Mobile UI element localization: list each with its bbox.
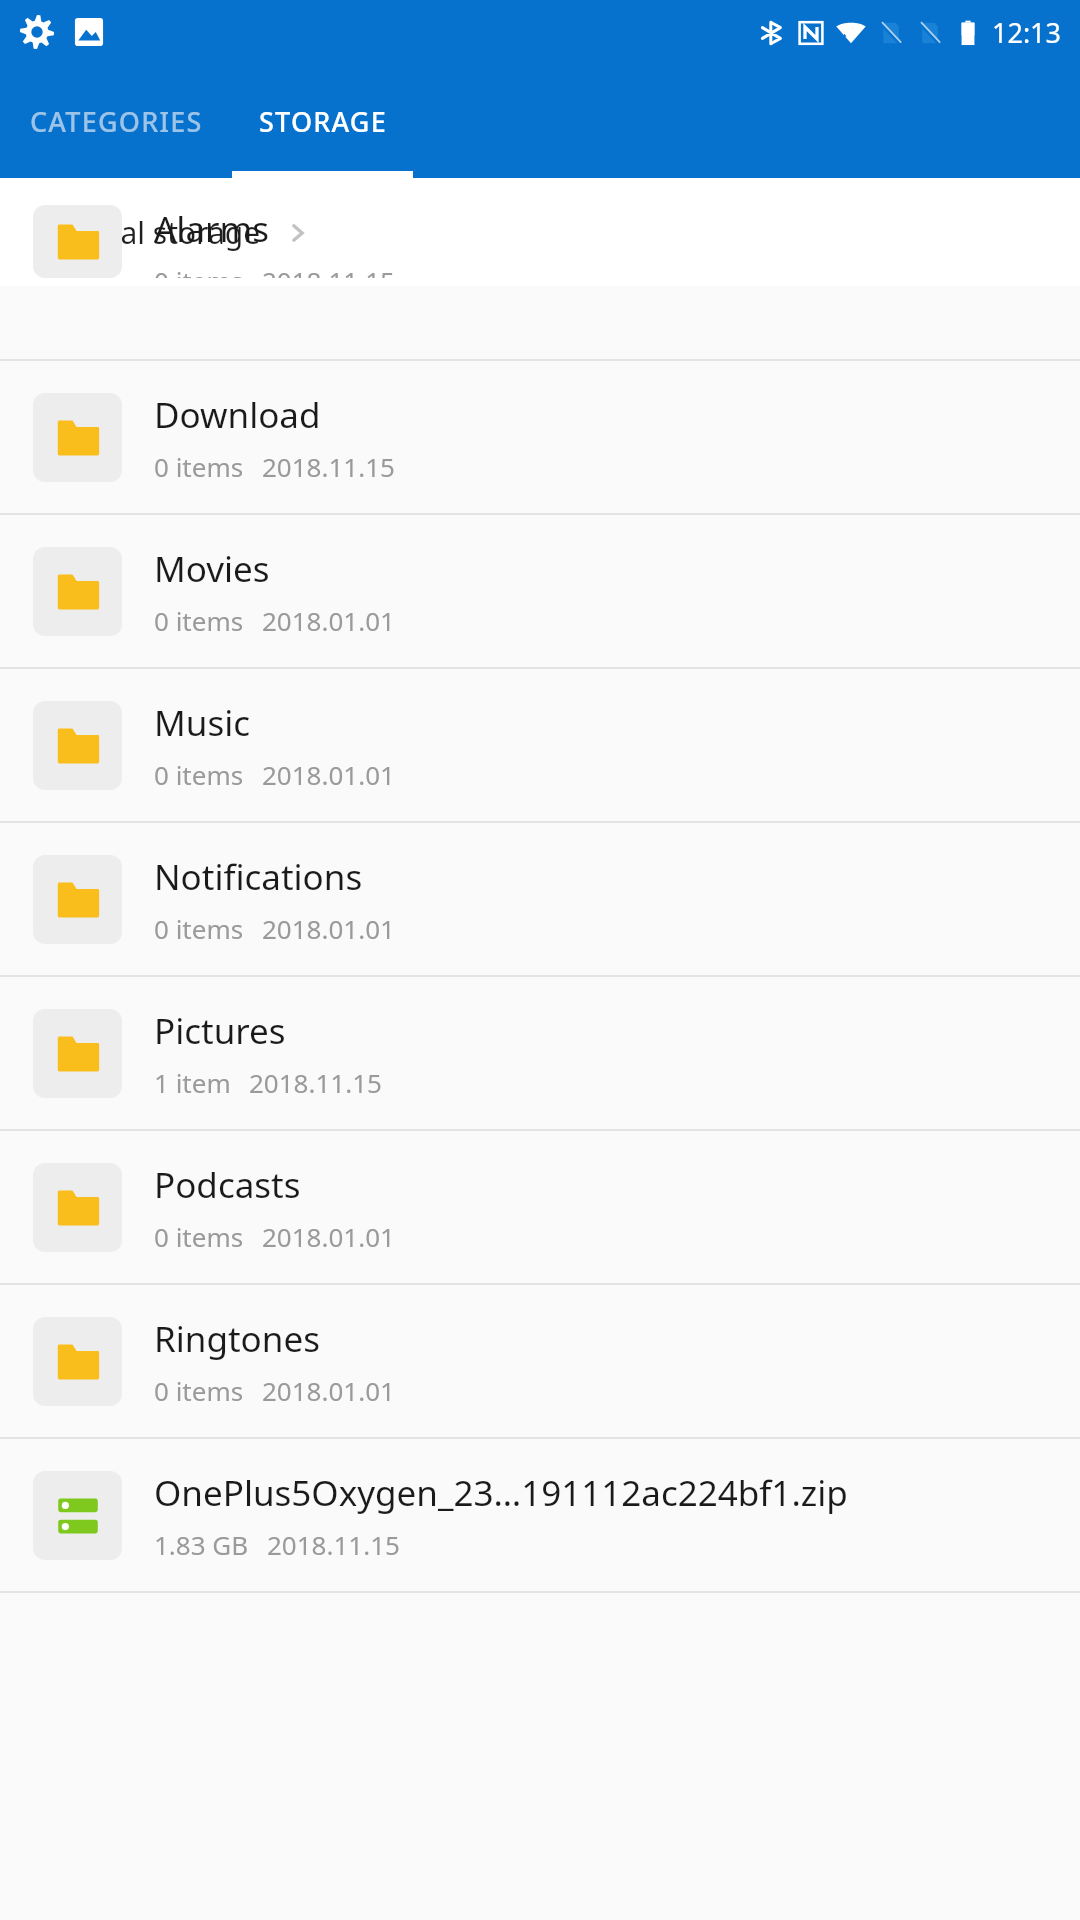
staticText: 2018.11.15 bbox=[262, 449, 395, 484]
staticText: 2018.01.01 bbox=[262, 911, 395, 946]
staticText: Podcasts bbox=[154, 1161, 301, 1209]
staticText: Download bbox=[154, 391, 321, 439]
staticText: 0 items bbox=[154, 1219, 244, 1254]
staticText: 0 items bbox=[154, 603, 244, 638]
staticText: 0 items bbox=[154, 449, 244, 484]
staticText: 0 items bbox=[154, 757, 244, 792]
staticText: 1.83 GB bbox=[154, 1527, 249, 1562]
other: Settings bbox=[18, 13, 56, 51]
button[interactable]: Notifications bbox=[0, 823, 1080, 975]
button[interactable]: Music bbox=[0, 669, 1080, 821]
staticText: Alarms bbox=[154, 205, 269, 253]
other: Screenshot bbox=[70, 13, 108, 51]
staticText: 2018.01.01 bbox=[262, 1219, 395, 1254]
button[interactable]: OnePlus5Oxygen_23…191112ac224bf1.zip bbox=[0, 1439, 1080, 1591]
staticText: Movies bbox=[154, 545, 270, 593]
staticText: Ringtones bbox=[154, 1315, 320, 1363]
button[interactable]: Podcasts bbox=[0, 1131, 1080, 1283]
staticText: 12:13 bbox=[992, 14, 1062, 51]
staticText: 0 items bbox=[154, 1373, 244, 1408]
staticText: 2018.11.15 bbox=[249, 1065, 382, 1100]
staticText: 2018.11.15 bbox=[267, 1527, 400, 1562]
staticText: CATEGORIES bbox=[30, 103, 203, 140]
staticText: OnePlus5Oxygen_23…191112ac224bf1.zip bbox=[154, 1469, 848, 1517]
staticText: 0 items bbox=[154, 263, 244, 278]
button[interactable]: Internal storage bbox=[0, 178, 1080, 286]
staticText: Music bbox=[154, 699, 250, 747]
button[interactable]: Pictures bbox=[0, 977, 1080, 1129]
button[interactable]: STORAGE bbox=[232, 64, 413, 178]
staticText: Pictures bbox=[154, 1007, 286, 1055]
staticText: 1 item bbox=[154, 1065, 231, 1100]
staticText: 2018.01.01 bbox=[262, 603, 395, 638]
staticText: 2018.01.01 bbox=[262, 757, 395, 792]
button[interactable]: Movies bbox=[0, 515, 1080, 667]
button[interactable]: Download bbox=[0, 361, 1080, 513]
staticText: Internal storage bbox=[33, 212, 261, 253]
staticText: Notifications bbox=[154, 853, 363, 901]
staticText: 0 items bbox=[154, 911, 244, 946]
staticText: 2018.01.01 bbox=[262, 1373, 395, 1408]
staticText: STORAGE bbox=[259, 103, 387, 140]
button[interactable]: Ringtones bbox=[0, 1285, 1080, 1437]
staticText: 2018.11.15 bbox=[262, 263, 395, 278]
button[interactable]: CATEGORIES bbox=[0, 64, 232, 178]
